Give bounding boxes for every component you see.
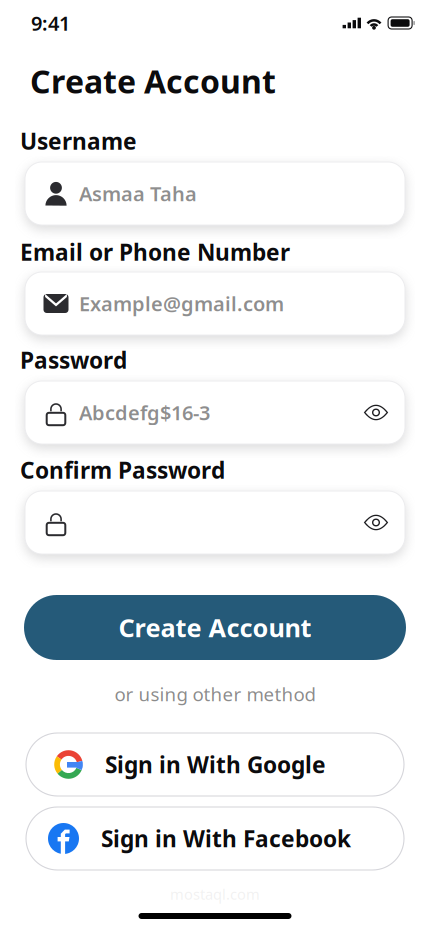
staticText: Password [20, 345, 127, 375]
staticText: Sign in With Facebook [101, 823, 351, 853]
staticText: Example@gmail.com [79, 290, 284, 317]
button[interactable]: Example@gmail.com [25, 272, 405, 335]
staticText: or using other method [114, 682, 315, 706]
staticText: 9:41 [31, 10, 70, 36]
button[interactable]: Create Account [24, 595, 406, 660]
staticText: mostaql.com [170, 884, 260, 904]
button[interactable] [25, 491, 405, 554]
button[interactable]: Asmaa Taha [25, 162, 405, 225]
staticText: Email or Phone Number [20, 237, 290, 267]
button[interactable]: Sign in With Facebook [26, 807, 404, 870]
staticText: Asmaa Taha [79, 180, 197, 207]
staticText: Sign in With Google [105, 749, 326, 779]
staticText: Create Account [30, 60, 276, 102]
button[interactable]: Sign in With Google [26, 733, 404, 796]
button[interactable]: Abcdefg$16-3 [25, 381, 405, 444]
staticText: Abcdefg$16-3 [79, 399, 210, 426]
staticText: Username [20, 126, 137, 156]
staticText: Create Account [118, 611, 311, 644]
staticText: Confirm Password [20, 455, 225, 485]
